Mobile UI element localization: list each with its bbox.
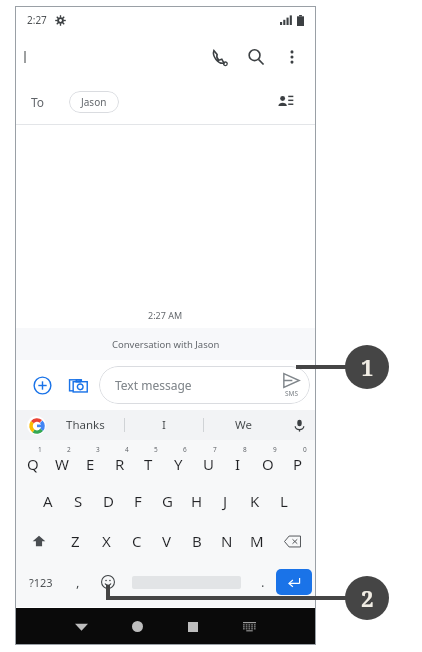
- staticText: 2:27: [27, 13, 47, 27]
- button[interactable]: .: [250, 561, 276, 603]
- staticText: V: [162, 531, 172, 551]
- button[interactable]: V: [152, 521, 182, 561]
- staticText: U: [203, 454, 214, 474]
- staticText: L: [280, 491, 288, 511]
- staticText: 1: [38, 445, 42, 454]
- staticText: O: [262, 454, 274, 474]
- staticText: 2:27 AM: [148, 309, 183, 321]
- staticText: C: [132, 531, 142, 551]
- staticText: .: [261, 573, 265, 591]
- staticText: M: [250, 531, 264, 551]
- button[interactable]: 2: [47, 440, 76, 481]
- staticText: 6: [183, 445, 187, 454]
- staticText: 4: [125, 445, 129, 454]
- button[interactable]: We: [204, 410, 282, 440]
- button[interactable]: 6: [163, 440, 193, 481]
- button[interactable]: Thanks: [46, 410, 124, 440]
- button[interactable]: G: [153, 481, 182, 521]
- button[interactable]: Attach: [27, 370, 57, 400]
- button[interactable]: 0: [283, 440, 313, 481]
- button[interactable]: B: [182, 521, 212, 561]
- button[interactable]: M: [242, 521, 272, 561]
- staticText: G: [162, 491, 173, 511]
- button[interactable]: Shift: [18, 521, 60, 561]
- staticText: Y: [174, 454, 183, 474]
- button[interactable]: Home: [109, 608, 165, 645]
- staticText: Jason: [81, 95, 107, 109]
- staticText: 3: [96, 445, 100, 454]
- staticText: J: [223, 491, 228, 511]
- button[interactable]: ?123: [19, 561, 63, 603]
- button[interactable]: Jason: [69, 91, 119, 113]
- button[interactable]: 3: [76, 440, 105, 481]
- button[interactable]: Call: [202, 39, 238, 75]
- staticText: SMS: [285, 389, 299, 398]
- button[interactable]: 5: [134, 440, 163, 481]
- button[interactable]: N: [212, 521, 242, 561]
- button[interactable]: I: [125, 410, 203, 440]
- button[interactable]: F: [123, 481, 153, 521]
- staticText: 9: [273, 445, 277, 454]
- button[interactable]: Add people: [270, 87, 300, 117]
- button[interactable]: Back: [53, 608, 109, 645]
- button[interactable]: C: [122, 521, 152, 561]
- staticText: Conversation with Jason: [112, 338, 220, 351]
- button[interactable]: Enter: [276, 569, 312, 595]
- button[interactable]: 9: [253, 440, 283, 481]
- button[interactable]: 7: [193, 440, 223, 481]
- staticText: Text message: [115, 377, 192, 393]
- staticText: 5: [154, 445, 158, 454]
- staticText: 0: [303, 445, 307, 454]
- staticText: P: [293, 454, 303, 474]
- button[interactable]: Google: [27, 416, 46, 435]
- staticText: 2: [67, 445, 71, 454]
- staticText: T: [144, 454, 153, 474]
- button[interactable]: K: [240, 481, 269, 521]
- staticText: 2: [361, 583, 374, 613]
- button[interactable]: Camera: [63, 370, 93, 400]
- button[interactable]: 4: [105, 440, 134, 481]
- button[interactable]: ,: [63, 561, 93, 603]
- button[interactable]: 8: [223, 440, 253, 481]
- button[interactable]: Backspace: [272, 521, 313, 561]
- staticText: K: [250, 491, 260, 511]
- staticText: ,: [76, 573, 80, 591]
- staticText: X: [102, 531, 111, 551]
- button[interactable]: Keyboard: [221, 608, 277, 645]
- staticText: B: [192, 531, 202, 551]
- button[interactable]: Text message: [99, 366, 310, 404]
- button[interactable]: Space: [123, 561, 250, 603]
- button[interactable]: Send SMS: [283, 372, 300, 398]
- staticText: 7: [213, 445, 217, 454]
- staticText: Thanks: [66, 417, 105, 433]
- staticText: I: [162, 417, 166, 433]
- staticText: E: [86, 454, 95, 474]
- staticText: 1: [361, 352, 374, 382]
- staticText: N: [221, 531, 233, 551]
- staticText: ?123: [29, 575, 53, 590]
- button[interactable]: A: [33, 481, 63, 521]
- staticText: Z: [71, 531, 80, 551]
- staticText: F: [134, 491, 142, 511]
- staticText: Q: [27, 454, 39, 474]
- staticText: H: [191, 491, 203, 511]
- button[interactable]: L: [269, 481, 298, 521]
- button[interactable]: J: [211, 481, 240, 521]
- button[interactable]: Voice input: [282, 410, 316, 440]
- button[interactable]: X: [91, 521, 122, 561]
- button[interactable]: H: [182, 481, 211, 521]
- button[interactable]: D: [93, 481, 123, 521]
- staticText: D: [103, 491, 114, 511]
- staticText: To: [31, 94, 45, 110]
- staticText: S: [74, 491, 83, 511]
- button[interactable]: Search: [238, 39, 274, 75]
- button[interactable]: Emoji: [93, 561, 123, 603]
- button[interactable]: Recents: [165, 608, 221, 645]
- staticText: I: [235, 454, 241, 474]
- button[interactable]: Z: [60, 521, 91, 561]
- button[interactable]: More options: [274, 39, 310, 75]
- button[interactable]: S: [63, 481, 93, 521]
- button[interactable]: 1: [18, 440, 47, 481]
- staticText: We: [235, 417, 252, 433]
- staticText: R: [115, 454, 125, 474]
